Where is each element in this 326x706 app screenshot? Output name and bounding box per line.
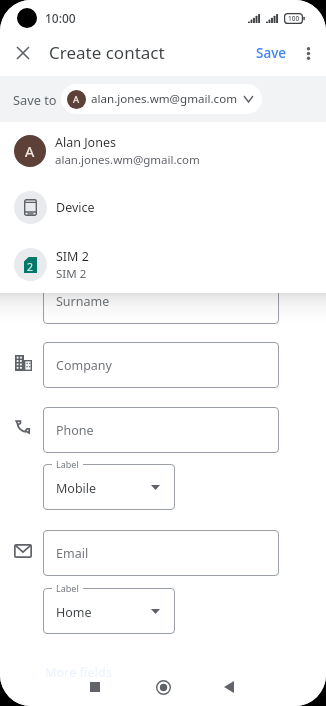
button[interactable]: 2: [0, 236, 326, 293]
staticText: Home: [56, 604, 92, 621]
button[interactable]: A: [61, 84, 262, 114]
staticText: A: [73, 93, 80, 106]
button[interactable]: Company: [43, 342, 279, 388]
button[interactable]: Save: [253, 39, 290, 67]
staticText: alan.jones.wm@gmail.com: [55, 152, 200, 168]
staticText: Label: [56, 458, 79, 470]
button[interactable]: A: [0, 122, 326, 179]
staticText: Phone: [56, 422, 94, 439]
button[interactable]: Label: [43, 464, 175, 510]
staticText: Create contact: [49, 41, 165, 64]
button[interactable]: Surname: [43, 278, 279, 324]
button[interactable]: Close: [4, 34, 42, 72]
staticText: More fields: [45, 664, 112, 681]
staticText: Mobile: [56, 480, 97, 497]
button[interactable]: Label: [43, 588, 175, 634]
staticText: Device: [56, 199, 95, 216]
button[interactable]: Recents: [75, 667, 115, 706]
staticText: 100: [288, 14, 300, 23]
staticText: 2: [27, 260, 34, 274]
staticText: Alan Jones: [55, 134, 116, 151]
staticText: 10:00: [45, 10, 76, 26]
button[interactable]: Home: [143, 667, 183, 706]
button[interactable]: More options: [292, 37, 324, 69]
button[interactable]: Back: [209, 667, 249, 706]
staticText: Email: [56, 545, 89, 562]
staticText: SIM 2: [56, 266, 87, 282]
button[interactable]: Email: [43, 530, 279, 576]
staticText: Save: [256, 44, 287, 62]
staticText: Save to: [13, 91, 57, 108]
staticText: A: [25, 141, 35, 161]
button[interactable]: More fields: [33, 657, 124, 687]
button[interactable]: Device: [0, 179, 326, 236]
staticText: Label: [56, 582, 79, 594]
staticText: SIM 2: [56, 248, 89, 265]
staticText: Surname: [56, 293, 110, 310]
button[interactable]: Phone: [43, 407, 279, 453]
staticText: Company: [56, 357, 112, 374]
staticText: alan.jones.wm@gmail.com: [91, 91, 238, 107]
